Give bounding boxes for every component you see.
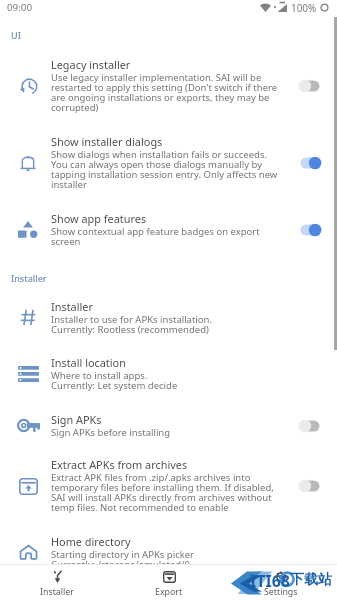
button[interactable]: Switch on <box>295 221 325 239</box>
button[interactable]: Export <box>113 566 225 600</box>
button[interactable]: Switch off <box>295 77 325 95</box>
staticText: Installer <box>11 272 47 284</box>
other: Export <box>163 571 176 583</box>
button[interactable]: Settings <box>225 566 337 600</box>
staticText: Show dialogs when installation fails or … <box>51 148 278 191</box>
button[interactable]: Extract APKs from archives <box>0 456 337 516</box>
staticText: ITI68 <box>250 570 290 592</box>
staticText: UI <box>11 29 21 41</box>
staticText: Extract APKs from archives <box>51 457 188 472</box>
staticText: Settings <box>264 586 298 598</box>
button[interactable]: Legacy installer <box>0 56 337 116</box>
staticText: Show contextual app feature badges on ex… <box>51 225 260 248</box>
staticText: 下载站 <box>290 571 332 589</box>
other: Installer <box>52 570 63 583</box>
staticText: Installer to use for APKs installation. … <box>51 313 212 336</box>
button[interactable]: Switch off <box>295 417 325 435</box>
button[interactable]: Sign APKs <box>0 411 337 440</box>
staticText: Show installer dialogs <box>51 134 163 149</box>
button[interactable]: UI <box>11 29 21 41</box>
staticText: Sign APKs <box>51 412 102 427</box>
staticText: Legacy installer <box>51 57 131 72</box>
other: Settings <box>275 571 287 583</box>
staticText: Starting directory in APKs picker Curren… <box>51 548 195 571</box>
button[interactable]: Show installer dialogs <box>0 133 337 193</box>
staticText: Home directory <box>51 534 131 549</box>
button[interactable]: Switch on <box>295 154 325 172</box>
button[interactable]: Home directory <box>0 533 337 572</box>
button[interactable]: Installer <box>0 566 113 600</box>
staticText: Installer <box>40 586 74 598</box>
staticText: Where to install apps. Currently: Let sy… <box>51 369 178 392</box>
staticText: Install location <box>51 355 126 370</box>
staticText: Extract APK files from .zip/.apks archiv… <box>51 471 274 514</box>
staticText: 100% <box>291 1 317 14</box>
staticText: Use legacy installer implementation. SAI… <box>51 71 278 114</box>
button[interactable]: Installer <box>11 272 47 284</box>
button[interactable]: Show app features <box>0 210 337 249</box>
button[interactable]: Install location <box>0 354 337 393</box>
staticText: 09:00 <box>7 1 33 14</box>
staticText: Sign APKs before installing <box>51 426 171 439</box>
button[interactable]: Switch off <box>295 477 325 495</box>
staticText: Show app features <box>51 211 147 226</box>
staticText: Installer <box>51 299 93 314</box>
button[interactable]: Installer <box>0 298 337 337</box>
staticText: Export <box>155 586 183 598</box>
